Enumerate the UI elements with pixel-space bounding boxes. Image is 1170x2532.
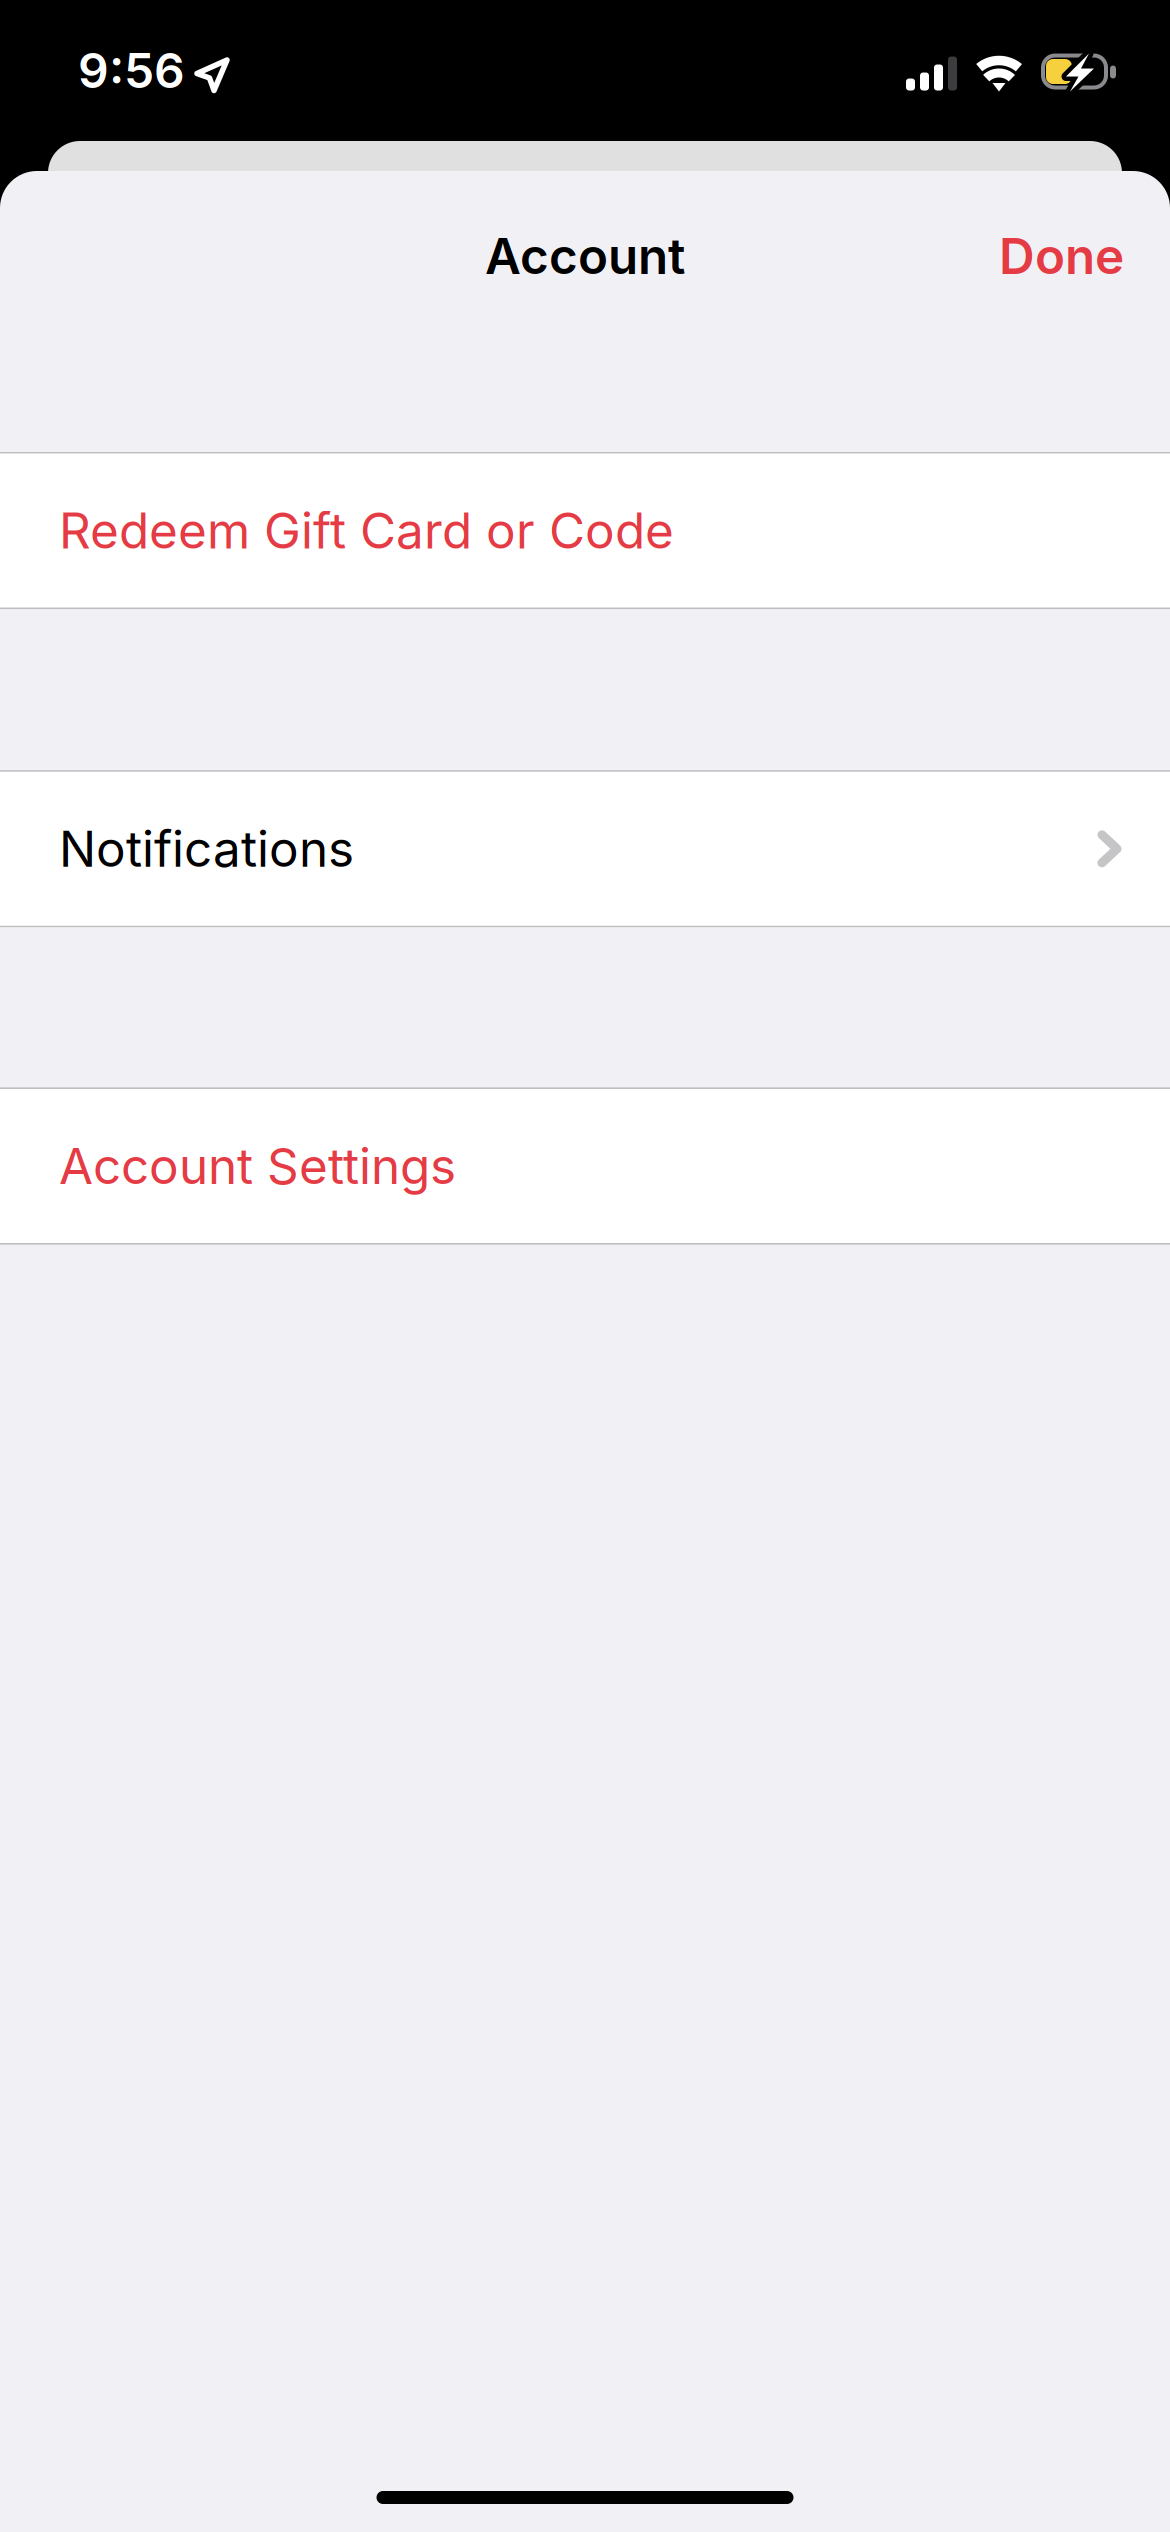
staticText: Notifications	[59, 819, 354, 879]
staticText: Account	[485, 226, 685, 286]
staticText: Redeem Gift Card or Code	[59, 501, 674, 560]
button[interactable]: Done	[981, 212, 1142, 300]
button[interactable]: Notifications	[0, 772, 1170, 926]
staticText: Account Settings	[59, 1136, 456, 1196]
staticText: 9:56	[78, 41, 185, 100]
button[interactable]: Account Settings	[0, 1089, 1170, 1243]
button[interactable]: Redeem Gift Card or Code	[0, 454, 1170, 608]
staticText: Done	[999, 226, 1124, 286]
